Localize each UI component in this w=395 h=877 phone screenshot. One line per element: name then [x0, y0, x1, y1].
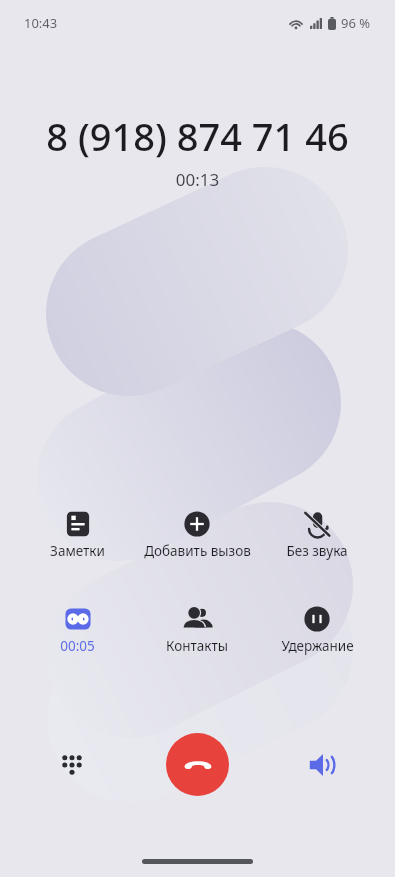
- staticText: Без звука: [286, 542, 348, 560]
- staticText: 8 (918) 874 71 46: [0, 110, 395, 162]
- button[interactable]: Dialpad: [41, 734, 103, 796]
- staticText: Заметки: [50, 542, 105, 560]
- button[interactable]: Добавить вызов: [137, 509, 257, 560]
- staticText: Контакты: [166, 637, 228, 655]
- button[interactable]: 00:05: [18, 604, 137, 655]
- button[interactable]: Контакты: [137, 604, 257, 655]
- button[interactable]: Заметки: [18, 509, 137, 560]
- button[interactable]: Удержание: [257, 604, 377, 655]
- staticText: 10:43: [24, 14, 58, 32]
- staticText: Удержание: [281, 637, 354, 655]
- staticText: 00:13: [0, 168, 395, 191]
- button[interactable]: Без звука: [257, 509, 377, 560]
- staticText: Добавить вызов: [144, 542, 251, 560]
- button[interactable]: End call: [166, 733, 229, 796]
- staticText: 00:05: [60, 637, 95, 655]
- staticText: 96 %: [341, 14, 371, 32]
- button[interactable]: Speaker: [292, 734, 354, 796]
